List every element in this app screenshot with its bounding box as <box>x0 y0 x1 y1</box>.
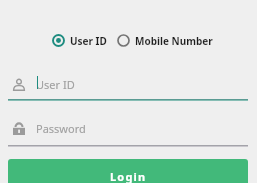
button[interactable]: User ID <box>52 34 107 48</box>
staticText: User ID <box>70 34 107 48</box>
button[interactable]: Login <box>8 159 248 183</box>
button[interactable]: User ID input field <box>8 74 248 101</box>
staticText: Password <box>36 121 86 136</box>
button[interactable]: Mobile Number <box>117 34 213 48</box>
button[interactable]: Password input field <box>8 119 248 147</box>
staticText: User ID <box>36 77 75 92</box>
staticText: Login <box>110 169 147 183</box>
staticText: Mobile Number <box>135 34 213 48</box>
